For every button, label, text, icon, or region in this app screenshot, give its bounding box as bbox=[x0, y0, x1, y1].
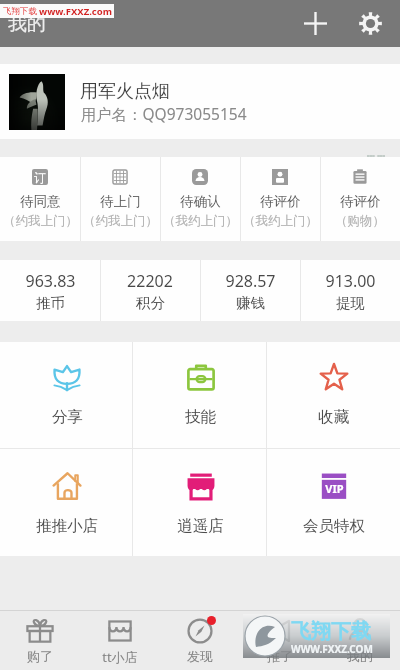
button[interactable]: Add bbox=[291, 0, 339, 47]
button[interactable]: 用军火点烟 bbox=[0, 64, 400, 139]
staticText: 待同意 bbox=[20, 193, 61, 210]
button[interactable]: 963.83 bbox=[0, 260, 100, 321]
button[interactable]: 逍遥店 bbox=[134, 449, 267, 556]
button[interactable]: 发现 bbox=[160, 611, 240, 670]
button[interactable]: 待评价 bbox=[240, 157, 320, 241]
staticText: 赚钱 bbox=[236, 294, 265, 312]
staticText: 购了 bbox=[27, 648, 53, 664]
staticText: 913.00 bbox=[325, 270, 376, 292]
button[interactable]: 推了 bbox=[240, 611, 320, 670]
staticText: 推推小店 bbox=[36, 516, 98, 536]
staticText: （我约上门） bbox=[163, 213, 238, 229]
staticText: WWW.FXXZ.COM bbox=[291, 642, 373, 656]
button[interactable]: 推推小店 bbox=[0, 449, 134, 556]
staticText: tt小店 bbox=[102, 648, 138, 666]
button[interactable]: VIP bbox=[267, 449, 400, 556]
button[interactable]: 待评价 bbox=[320, 157, 400, 241]
staticText: 积分 bbox=[136, 294, 165, 312]
button[interactable]: 技能 bbox=[134, 342, 267, 448]
staticText: www.FXXZ.com bbox=[39, 5, 112, 18]
staticText: 待评价 bbox=[340, 193, 381, 210]
staticText: 技能 bbox=[185, 407, 216, 427]
staticText: 我的 bbox=[347, 648, 373, 664]
button[interactable]: 928.57 bbox=[200, 260, 300, 321]
staticText: 待评价 bbox=[260, 193, 301, 210]
staticText: 飞翔下载 bbox=[3, 6, 37, 17]
staticText: （约我上门） bbox=[3, 213, 78, 229]
button[interactable]: 订 bbox=[0, 157, 80, 241]
staticText: 订 bbox=[34, 170, 46, 185]
staticText: VIP bbox=[325, 481, 344, 496]
button[interactable]: 购了 bbox=[0, 611, 80, 670]
staticText: 用军火点烟 bbox=[80, 80, 170, 103]
button[interactable]: QR code bbox=[356, 144, 396, 184]
button[interactable]: 22202 bbox=[100, 260, 200, 321]
staticText: 飞翔下载 bbox=[291, 619, 371, 644]
staticText: （约我上门） bbox=[83, 213, 158, 229]
staticText: 收藏 bbox=[318, 407, 349, 427]
button[interactable]: 待上门 bbox=[80, 157, 160, 241]
staticText: 逍遥店 bbox=[177, 516, 224, 536]
staticText: 推了 bbox=[267, 648, 293, 664]
staticText: 推币 bbox=[36, 294, 65, 312]
staticText: 待上门 bbox=[100, 193, 141, 210]
staticText: 我的 bbox=[8, 12, 46, 36]
staticText: （我约上门） bbox=[243, 213, 318, 229]
staticText: 22202 bbox=[127, 270, 173, 292]
staticText: 963.83 bbox=[25, 270, 76, 292]
staticText: 用户名：QQ973055154 bbox=[80, 103, 247, 124]
staticText: 928.57 bbox=[225, 270, 276, 292]
staticText: 待确认 bbox=[180, 193, 221, 210]
button[interactable]: 收藏 bbox=[267, 342, 400, 448]
staticText: 提现 bbox=[336, 294, 365, 312]
button[interactable]: 我的 bbox=[320, 611, 400, 670]
button[interactable]: 分享 bbox=[0, 342, 134, 448]
button[interactable]: tt小店 bbox=[80, 611, 160, 670]
staticText: （购物） bbox=[335, 213, 385, 229]
staticText: 发现 bbox=[187, 648, 213, 664]
button[interactable]: 待确认 bbox=[160, 157, 240, 241]
button[interactable]: Settings bbox=[347, 0, 394, 47]
staticText: 分享 bbox=[52, 407, 83, 427]
button[interactable]: 913.00 bbox=[300, 260, 400, 321]
staticText: 会员特权 bbox=[303, 516, 365, 536]
